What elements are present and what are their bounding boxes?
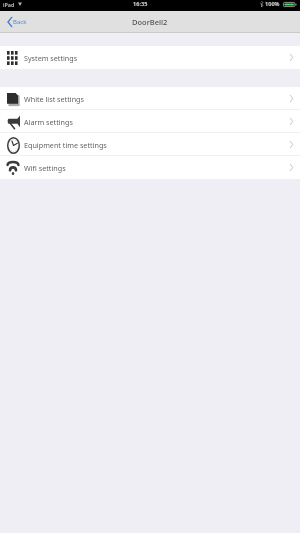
staticText: iPad	[3, 1, 15, 8]
staticText: 100%	[265, 0, 280, 8]
staticText: DoorBell2	[132, 17, 168, 27]
staticText: System settings	[24, 53, 78, 63]
button[interactable]: Back	[0, 13, 33, 31]
button[interactable]: Equipment time settings	[0, 133, 300, 156]
button[interactable]: White list settings	[0, 87, 300, 110]
staticText: Equipment time settings	[24, 140, 107, 150]
button[interactable]: Alarm settings	[0, 110, 300, 133]
button[interactable]: Wifi settings	[0, 156, 300, 179]
staticText: Alarm settings	[24, 117, 73, 127]
staticText: Wifi settings	[24, 163, 66, 173]
staticText: 16:35	[133, 0, 148, 8]
staticText: White list settings	[24, 94, 84, 104]
button[interactable]: System settings	[0, 46, 300, 69]
staticText: Back	[13, 18, 27, 26]
